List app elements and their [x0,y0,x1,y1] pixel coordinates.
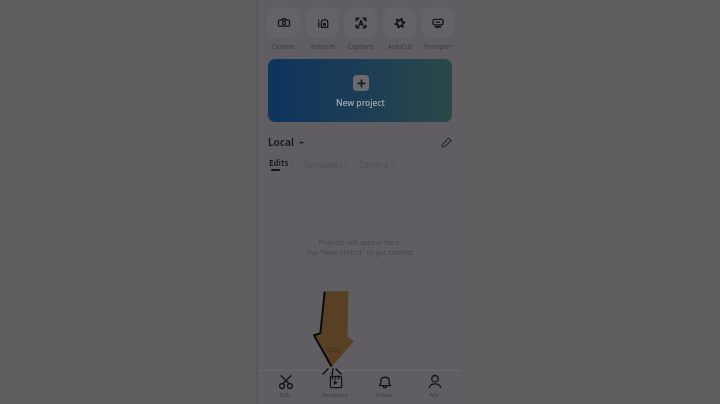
button[interactable]: Camera [359,159,395,171]
staticText: Templates [304,159,343,170]
button[interactable]: Captions [344,7,377,50]
button[interactable]: New project [268,59,452,122]
button[interactable]: Prompter [421,7,454,50]
button[interactable]: Template [313,375,358,399]
staticText: Prompter [424,42,452,50]
button[interactable]: Edits [269,157,295,171]
staticText: Me [430,391,439,399]
staticText: Camera [359,159,389,170]
button[interactable]: AutoCut [383,7,416,50]
staticText: Local [268,135,294,149]
staticText: 0 [291,159,295,167]
staticText: Projects will appear here. Tap "New proj… [258,238,462,258]
button[interactable]: Retouch [306,7,339,50]
button[interactable]: Camera [267,7,300,50]
button[interactable]: Edit [263,375,308,399]
staticText: Edit [280,391,291,399]
button[interactable]: Templates [304,159,349,171]
staticText: Edits [269,157,289,168]
staticText: Template [322,391,349,399]
staticText: Captions [348,42,374,50]
staticText: Retouch [311,42,335,50]
button[interactable]: Local [268,135,305,149]
staticText: AutoCut [388,42,412,50]
button[interactable]: Inbox [362,375,407,399]
staticText: 0 [391,161,395,169]
staticText: New project [336,97,385,109]
button[interactable]: Me [412,375,457,399]
staticText: Inbox [376,391,393,399]
button[interactable]: Edit projects [438,134,454,150]
staticText: Camera [272,42,295,50]
staticText: 0 [345,161,349,169]
